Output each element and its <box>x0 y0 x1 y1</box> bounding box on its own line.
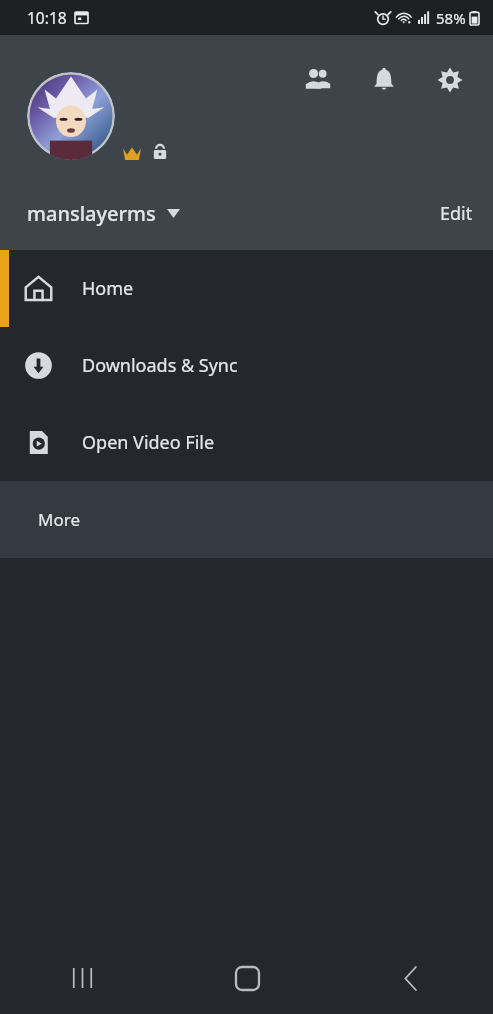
staticText: manslayerms <box>27 200 156 227</box>
button[interactable]: Home <box>165 942 329 1014</box>
button[interactable]: Recent apps <box>0 942 165 1014</box>
button[interactable]: Profile picture <box>27 72 115 160</box>
staticText: Home <box>82 276 134 301</box>
staticText: Edit <box>440 201 473 226</box>
button[interactable]: Edit <box>420 195 493 232</box>
button[interactable]: Home <box>0 250 493 327</box>
staticText: Downloads & Sync <box>82 353 238 378</box>
button[interactable]: Friends <box>295 57 341 103</box>
button[interactable]: Back <box>329 942 493 1014</box>
staticText: More <box>38 508 80 531</box>
button[interactable]: Open Video File <box>0 404 493 481</box>
button[interactable]: Settings <box>427 57 473 103</box>
button[interactable]: manslayerms <box>0 196 188 231</box>
staticText: 10:18 <box>27 7 67 28</box>
staticText: Open Video File <box>82 430 215 455</box>
button[interactable]: Downloads & Sync <box>0 327 493 404</box>
button[interactable]: Notifications <box>361 57 407 103</box>
staticText: 58% <box>436 8 466 28</box>
button[interactable]: More <box>0 481 493 558</box>
